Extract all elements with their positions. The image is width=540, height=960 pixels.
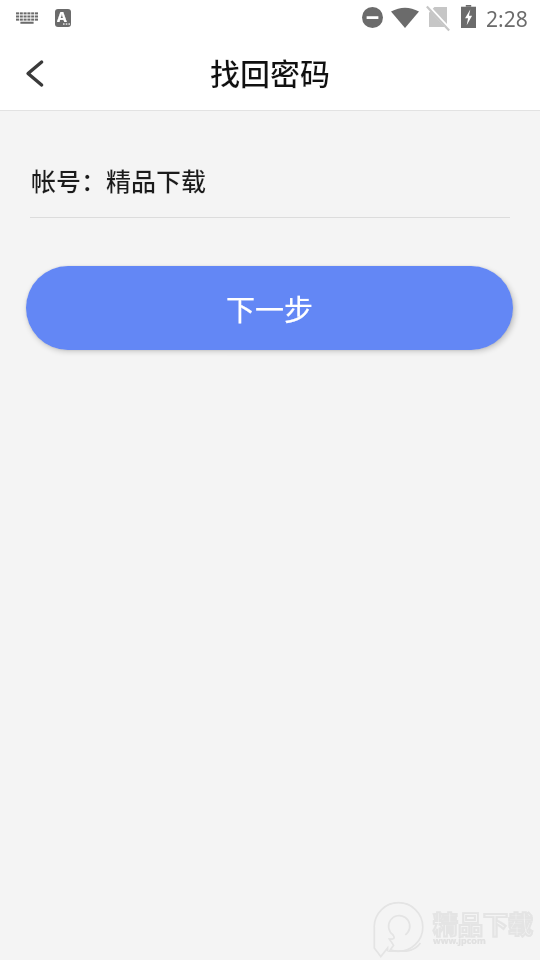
staticText: A: [57, 9, 67, 25]
staticText: 下一步: [226, 287, 314, 329]
button[interactable]: Back: [0, 39, 70, 109]
staticText: 精品下载: [433, 905, 534, 941]
staticText: www.jpcom: [433, 934, 486, 946]
staticText: 帐号：精品下载: [31, 162, 207, 198]
staticText: 找回密码: [210, 50, 330, 93]
staticText: 2:28: [486, 5, 528, 34]
button[interactable]: 下一步: [26, 266, 513, 350]
